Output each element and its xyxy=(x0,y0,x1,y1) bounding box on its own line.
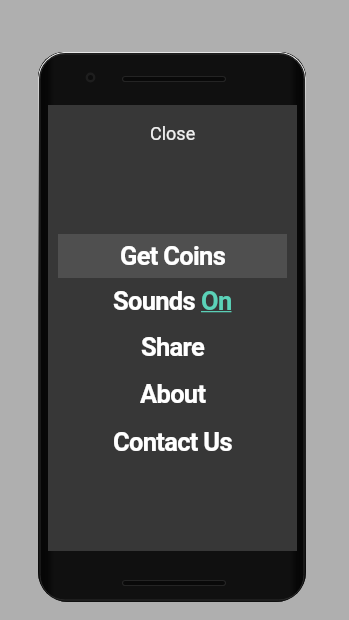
button[interactable]: Get Coins xyxy=(58,234,287,278)
staticText: On xyxy=(201,286,232,316)
button[interactable]: Share xyxy=(48,327,297,367)
staticText: Get Coins xyxy=(120,241,226,271)
button[interactable]: Close xyxy=(48,117,297,149)
staticText: About xyxy=(140,379,206,409)
button[interactable]: Sounds xyxy=(48,281,297,321)
button[interactable]: About xyxy=(48,374,297,414)
staticText: Share xyxy=(141,332,204,362)
staticText: Contact Us xyxy=(113,427,232,457)
button[interactable]: Contact Us xyxy=(48,422,297,462)
staticText: Sounds xyxy=(113,286,201,316)
staticText: Close xyxy=(150,123,196,144)
